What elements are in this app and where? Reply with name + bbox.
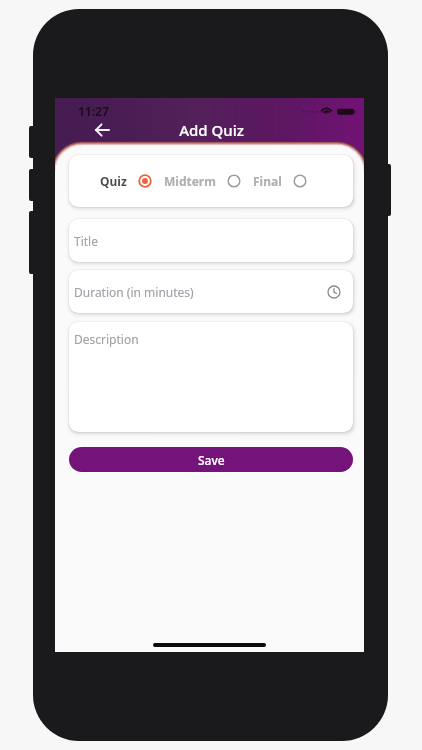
staticText: Duration (in minutes) bbox=[74, 284, 194, 300]
button[interactable]: Back bbox=[88, 116, 116, 144]
button[interactable]: Quiz bbox=[69, 155, 353, 207]
button[interactable]: Description bbox=[69, 322, 353, 432]
staticText: Description bbox=[74, 331, 139, 347]
staticText: Midterm bbox=[164, 173, 216, 189]
button[interactable]: Duration (in minutes) bbox=[69, 270, 353, 313]
button[interactable]: Title bbox=[69, 219, 353, 262]
staticText: Final bbox=[253, 173, 282, 189]
staticText: Save bbox=[198, 452, 225, 468]
button[interactable]: Save bbox=[69, 447, 353, 472]
staticText: 11:27 bbox=[78, 103, 109, 119]
staticText: Add Quiz bbox=[57, 120, 364, 140]
staticText: Title bbox=[74, 233, 98, 249]
staticText: Quiz bbox=[100, 173, 127, 189]
